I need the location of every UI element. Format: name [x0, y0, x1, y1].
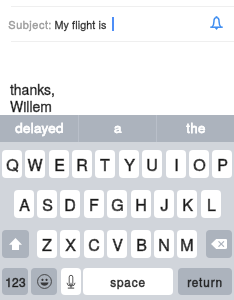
staticText: Subject:: [8, 16, 52, 32]
staticText: J: [160, 193, 169, 216]
staticText: return: [187, 273, 223, 290]
button[interactable]: C: [84, 230, 104, 258]
staticText: a: [114, 118, 122, 137]
button[interactable]: X: [60, 230, 80, 258]
staticText: L: [207, 193, 216, 216]
staticText: S: [42, 193, 53, 216]
button[interactable]: B: [131, 230, 151, 258]
button[interactable]: W: [25, 150, 45, 178]
staticText: 123: [5, 273, 26, 290]
staticText: space: [110, 273, 146, 290]
staticText: the: [186, 118, 206, 137]
staticText: V: [112, 233, 123, 256]
staticText: delayed: [15, 118, 64, 137]
staticText: I: [174, 153, 179, 176]
staticText: Z: [42, 233, 52, 256]
button[interactable]: Z: [37, 230, 57, 258]
button[interactable]: E: [49, 150, 69, 178]
button[interactable]: G: [107, 190, 127, 218]
button[interactable]: D: [60, 190, 80, 218]
button[interactable]: T: [95, 150, 115, 178]
staticText: R: [76, 153, 88, 176]
button[interactable]: Backspace: [206, 230, 232, 258]
staticText: H: [135, 193, 147, 216]
staticText: Willem: [10, 96, 52, 116]
staticText: N: [158, 233, 170, 256]
staticText: My flight is: [54, 17, 107, 32]
staticText: Y: [124, 153, 135, 176]
staticText: My flight is: [54, 17, 107, 32]
button[interactable]: S: [37, 190, 57, 218]
staticText: I: [174, 153, 179, 176]
staticText: G: [111, 193, 124, 216]
staticText: thanks,: [10, 79, 55, 99]
button[interactable]: O: [189, 150, 209, 178]
staticText: M: [180, 233, 194, 256]
staticText: Y: [124, 153, 135, 176]
staticText: V: [112, 233, 123, 256]
button[interactable]: U: [142, 150, 162, 178]
staticText: P: [217, 153, 228, 176]
button[interactable]: space: [83, 268, 173, 295]
button[interactable]: the: [157, 115, 234, 142]
staticText: K: [182, 193, 193, 216]
staticText: space: [110, 273, 146, 290]
staticText: B: [136, 233, 147, 256]
staticText: C: [88, 233, 100, 256]
staticText: Willem: [10, 96, 52, 116]
button[interactable]: A: [14, 190, 34, 218]
button[interactable]: Shift: [2, 230, 29, 258]
button[interactable]: a: [79, 115, 156, 142]
staticText: W: [27, 153, 43, 176]
staticText: B: [136, 233, 147, 256]
staticText: E: [54, 153, 65, 176]
staticText: F: [89, 193, 99, 216]
button[interactable]: Dictate: [61, 268, 81, 295]
staticText: Q: [6, 153, 19, 176]
staticText: U: [146, 153, 158, 176]
staticText: N: [158, 233, 170, 256]
staticText: H: [135, 193, 147, 216]
button[interactable]: J: [154, 190, 174, 218]
staticText: L: [207, 193, 216, 216]
button[interactable]: N: [154, 230, 174, 258]
button[interactable]: L: [201, 190, 221, 218]
button[interactable]: delayed: [0, 115, 78, 142]
staticText: D: [64, 193, 76, 216]
button[interactable]: P: [212, 150, 232, 178]
button[interactable]: Notifications: [207, 15, 225, 33]
button[interactable]: Q: [2, 150, 22, 178]
button[interactable]: H: [131, 190, 151, 218]
staticText: a: [114, 118, 122, 137]
staticText: U: [146, 153, 158, 176]
staticText: thanks,: [10, 79, 55, 99]
staticText: return: [187, 273, 223, 290]
button[interactable]: return: [178, 268, 232, 295]
button[interactable]: Y: [119, 150, 139, 178]
staticText: A: [19, 193, 30, 216]
staticText: X: [65, 233, 76, 256]
staticText: O: [193, 153, 206, 176]
staticText: J: [160, 193, 169, 216]
staticText: the: [186, 118, 206, 137]
staticText: Z: [42, 233, 52, 256]
staticText: P: [217, 153, 228, 176]
staticText: Subject:: [8, 16, 52, 32]
staticText: F: [89, 193, 99, 216]
button[interactable]: F: [84, 190, 104, 218]
button[interactable]: V: [107, 230, 127, 258]
staticText: delayed: [15, 118, 64, 137]
button[interactable]: Numbers: [2, 268, 28, 295]
staticText: R: [76, 153, 88, 176]
staticText: E: [54, 153, 65, 176]
button[interactable]: M: [177, 230, 197, 258]
button[interactable]: I: [166, 150, 186, 178]
staticText: 123: [5, 273, 26, 290]
button[interactable]: Emoji: [31, 268, 57, 295]
button[interactable]: K: [177, 190, 197, 218]
staticText: Q: [6, 153, 19, 176]
staticText: D: [64, 193, 76, 216]
button[interactable]: R: [72, 150, 92, 178]
staticText: S: [42, 193, 53, 216]
staticText: T: [100, 153, 110, 176]
